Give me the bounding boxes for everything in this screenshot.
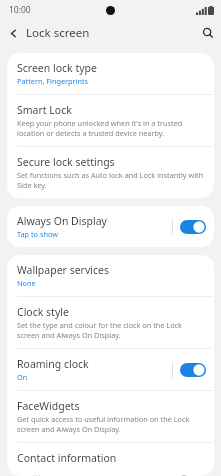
button[interactable]: Wallpaper services xyxy=(7,255,214,296)
button[interactable]: FaceWidgets xyxy=(7,391,214,442)
button[interactable]: Back xyxy=(0,20,26,46)
button[interactable]: Clock style xyxy=(7,297,214,348)
staticText: Lock screen xyxy=(26,25,90,41)
staticText: Screen lock type xyxy=(17,61,97,75)
button[interactable]: Toggle Roaming clock xyxy=(180,362,206,378)
staticText: Roaming clock xyxy=(17,357,89,371)
staticText: FaceWidgets xyxy=(17,399,80,413)
staticText: Set the type and colour for the clock on… xyxy=(17,320,206,340)
staticText: Contact information xyxy=(17,451,117,465)
button[interactable]: Secure lock settings xyxy=(7,147,214,198)
staticText: Secure lock settings xyxy=(17,155,115,169)
staticText: Wallpaper services xyxy=(17,263,109,277)
staticText: Clock style xyxy=(17,305,69,319)
button[interactable]: Roaming clock xyxy=(7,349,214,390)
button[interactable]: Search xyxy=(195,20,221,46)
button[interactable]: Smart Lock xyxy=(7,95,214,146)
staticText: Set functions such as Auto lock and Lock… xyxy=(17,170,206,190)
button[interactable]: Always On Display xyxy=(7,206,214,247)
staticText: On xyxy=(17,372,28,382)
staticText: Get quick access to useful information o… xyxy=(17,414,206,434)
button[interactable]: Contact information xyxy=(7,443,214,476)
staticText: Pattern, Fingerprints xyxy=(17,76,89,86)
staticText: None xyxy=(17,278,36,288)
button[interactable]: Screen lock type xyxy=(7,53,214,94)
staticText: Tap to show xyxy=(17,229,58,239)
staticText: 10:00 xyxy=(9,4,31,16)
staticText: Keep your phone unlocked when it's in a … xyxy=(17,118,206,138)
staticText: Always On Display xyxy=(17,214,107,228)
staticText: Smart Lock xyxy=(17,103,72,117)
button[interactable]: Toggle Always On Display xyxy=(180,219,206,235)
